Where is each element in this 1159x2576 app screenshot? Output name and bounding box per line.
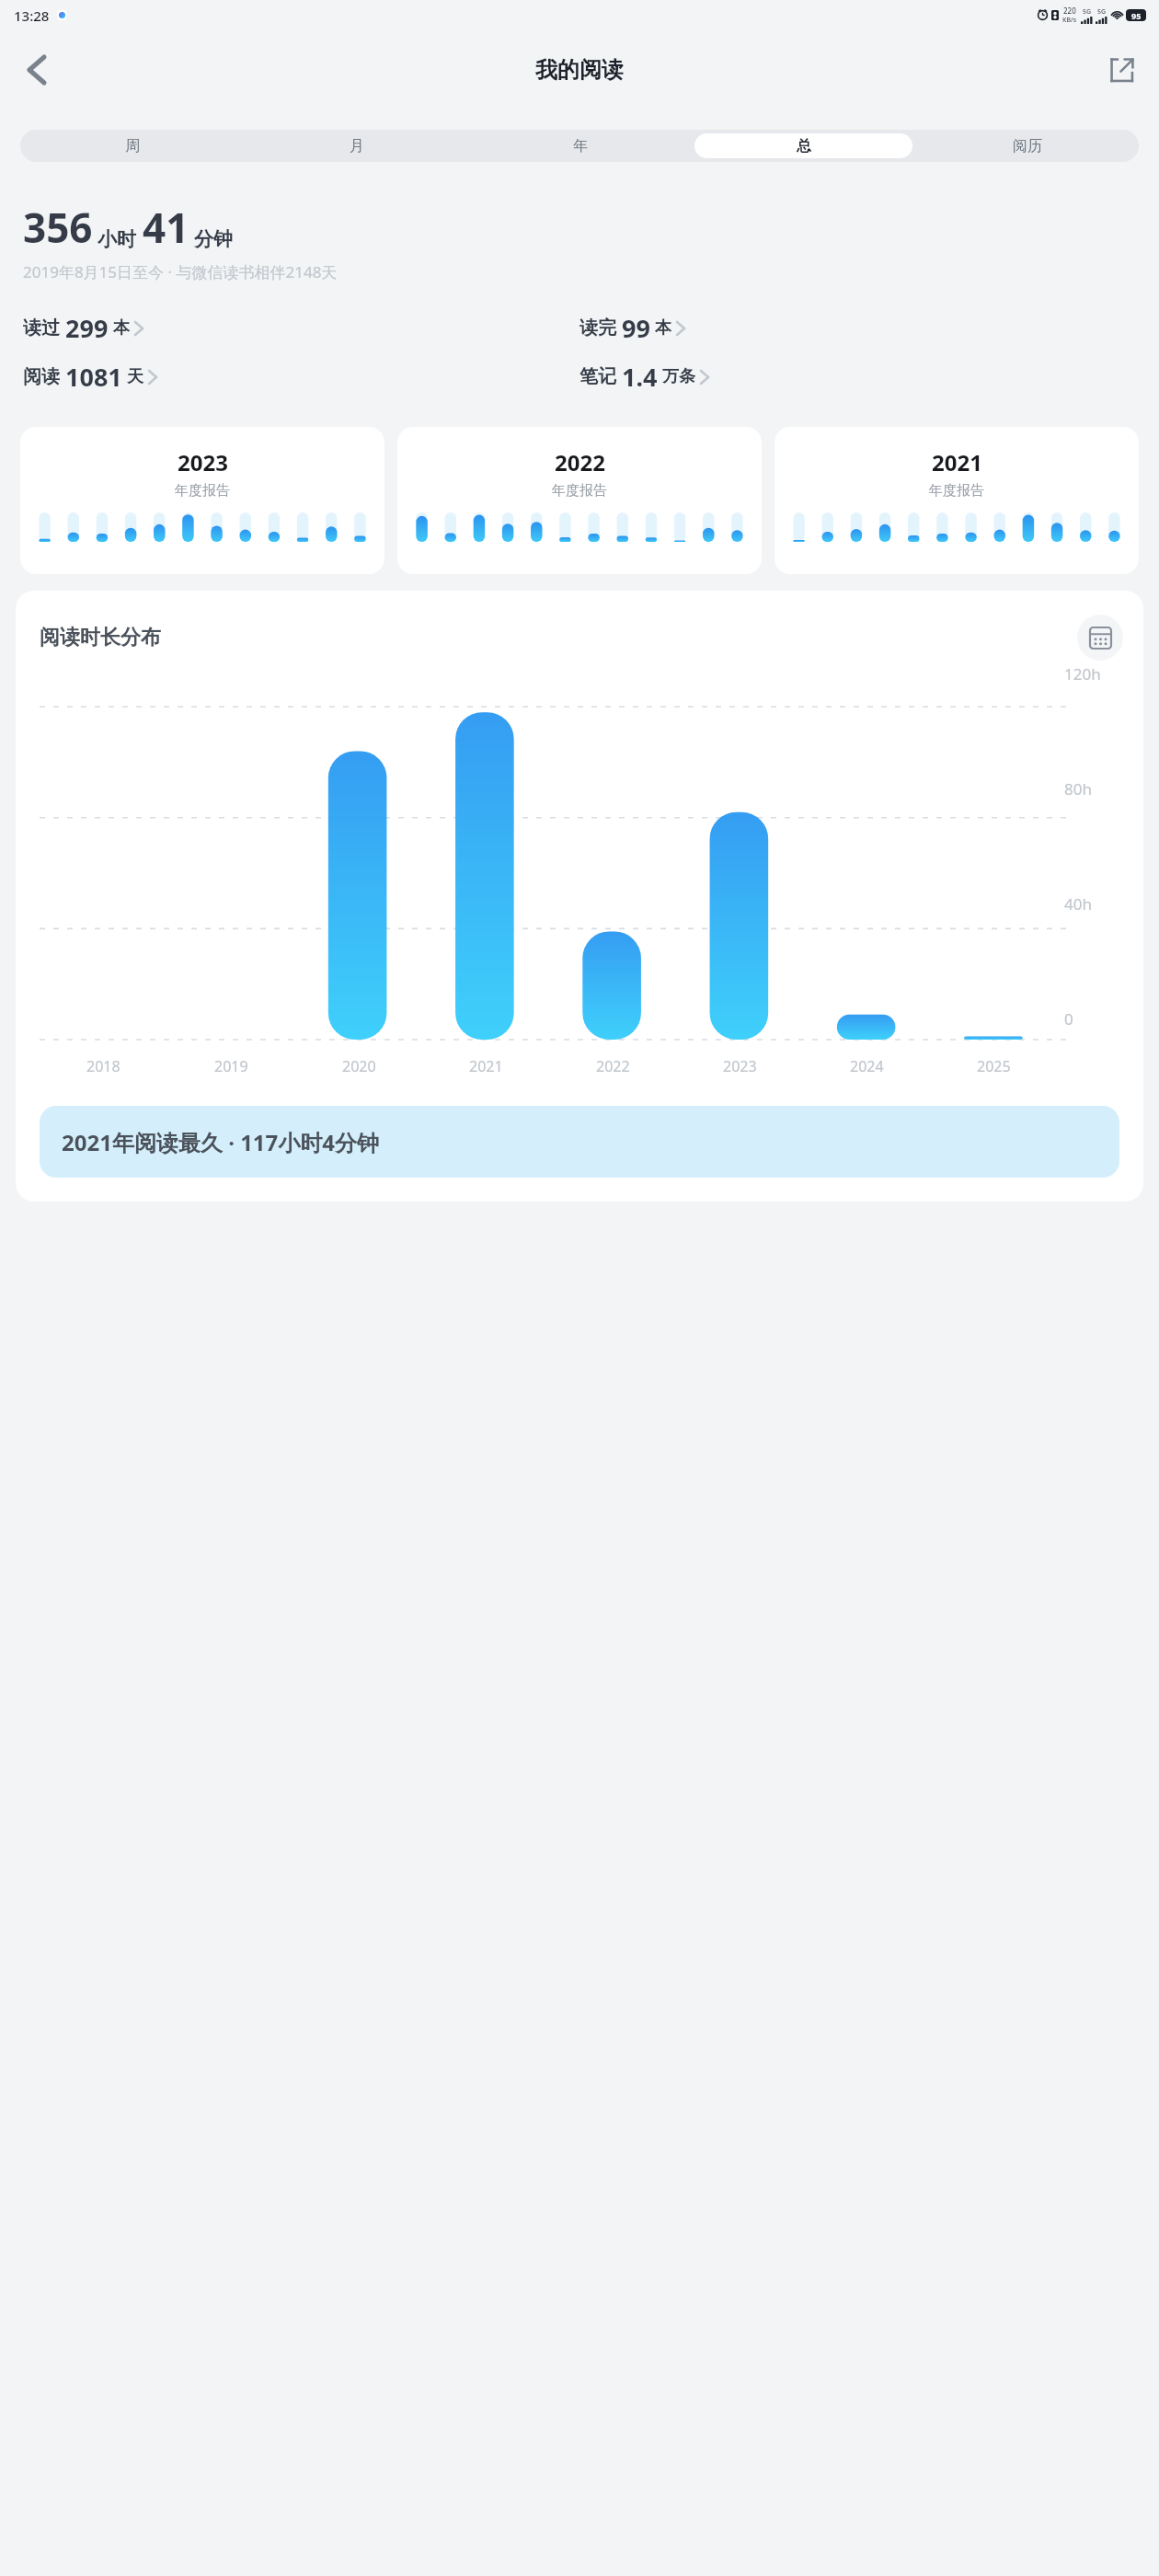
staticText: 1081 bbox=[65, 360, 122, 394]
staticText: 本 bbox=[655, 317, 671, 339]
button[interactable]: 2021年阅读最久 · 117小时4分钟 bbox=[40, 1106, 1119, 1178]
staticText: 天 bbox=[127, 366, 143, 387]
staticText: 80h bbox=[1064, 778, 1092, 799]
button[interactable]: 2023 bbox=[20, 427, 384, 574]
staticText: 年度报告 bbox=[175, 482, 230, 500]
button[interactable]: Share bbox=[1098, 46, 1146, 94]
staticText: 笔记 bbox=[579, 365, 616, 388]
button[interactable]: Back bbox=[11, 44, 63, 96]
staticText: 2019 bbox=[214, 1056, 248, 1076]
button[interactable]: 阅读 bbox=[23, 360, 579, 394]
button[interactable]: 周 bbox=[23, 133, 242, 158]
button[interactable]: 年 bbox=[471, 133, 689, 158]
staticText: 阅读 bbox=[23, 365, 60, 388]
button[interactable]: 读完 bbox=[579, 311, 1136, 345]
staticText: 周 bbox=[125, 137, 140, 155]
staticText: 95 bbox=[1131, 10, 1142, 21]
staticText: 2024 bbox=[850, 1056, 884, 1076]
staticText: 我的阅读 bbox=[535, 56, 624, 84]
staticText: 5G bbox=[1097, 7, 1107, 17]
staticText: 2018 bbox=[86, 1056, 120, 1076]
staticText: 月 bbox=[350, 137, 364, 155]
staticText: 分钟 bbox=[194, 227, 233, 251]
staticText: 本 bbox=[113, 317, 130, 339]
staticText: 2021 bbox=[469, 1056, 503, 1076]
staticText: 年 bbox=[573, 137, 588, 155]
staticText: 年度报告 bbox=[929, 482, 984, 500]
staticText: 5G bbox=[1083, 7, 1092, 17]
staticText: 299 bbox=[65, 311, 109, 345]
staticText: 40h bbox=[1064, 893, 1092, 914]
button[interactable]: 总 bbox=[694, 133, 912, 158]
staticText: 2022 bbox=[555, 447, 605, 477]
staticText: 总 bbox=[797, 137, 811, 155]
staticText: 阅读时长分布 bbox=[40, 625, 1077, 650]
staticText: 13:28 bbox=[14, 6, 50, 25]
button[interactable]: 笔记 bbox=[579, 360, 1136, 394]
button[interactable]: 2021 bbox=[775, 427, 1139, 574]
staticText: 2023 bbox=[723, 1056, 757, 1076]
button[interactable]: 阅历 bbox=[918, 133, 1136, 158]
button[interactable]: 月 bbox=[247, 133, 465, 158]
button[interactable]: 2022 bbox=[397, 427, 762, 574]
staticText: 阅历 bbox=[1013, 137, 1042, 155]
staticText: 2023 bbox=[178, 447, 228, 477]
staticText: 万条 bbox=[662, 366, 695, 387]
staticText: 0 bbox=[1064, 1008, 1073, 1029]
button[interactable]: 读过 bbox=[23, 311, 579, 345]
staticText: 356 bbox=[23, 200, 93, 255]
staticText: 2022 bbox=[596, 1056, 630, 1076]
staticText: 小时 bbox=[98, 227, 136, 251]
staticText: 2019年8月15日至今 · 与微信读书相伴2148天 bbox=[23, 261, 338, 282]
staticText: KB/s bbox=[1062, 16, 1077, 25]
staticText: 读完 bbox=[579, 316, 616, 339]
staticText: 220 bbox=[1063, 6, 1076, 16]
staticText: 2020 bbox=[342, 1056, 376, 1076]
staticText: 99 bbox=[622, 311, 650, 345]
staticText: 2021 bbox=[932, 447, 982, 477]
staticText: 2025 bbox=[977, 1056, 1011, 1076]
staticText: 年度报告 bbox=[552, 482, 607, 500]
staticText: 120h bbox=[1064, 663, 1101, 684]
button[interactable]: Calendar bbox=[1077, 615, 1123, 661]
staticText: 41 bbox=[143, 200, 189, 255]
staticText: 读过 bbox=[23, 316, 60, 339]
staticText: 2021年阅读最久 · 117小时4分钟 bbox=[62, 1127, 380, 1157]
staticText: 1.4 bbox=[622, 360, 658, 394]
